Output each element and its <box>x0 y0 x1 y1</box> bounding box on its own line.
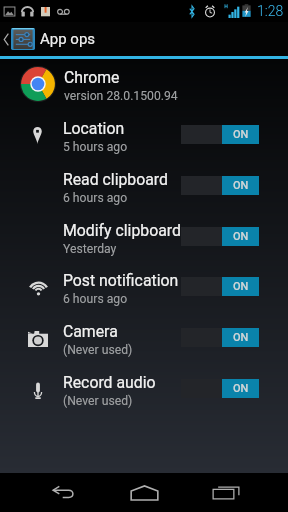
button[interactable]: Modify clipboard <box>0 212 288 262</box>
button[interactable]: Post notification <box>0 262 288 312</box>
staticText: 6 hours ago <box>63 191 128 205</box>
button[interactable]: Recent apps <box>185 473 266 512</box>
staticText: 6 hours ago <box>63 292 128 306</box>
button[interactable]: Toggle permission <box>181 277 259 296</box>
staticText: version 28.0.1500.94 <box>64 89 178 103</box>
button[interactable]: Chrome <box>0 59 288 110</box>
staticText: ON <box>233 280 249 293</box>
button[interactable]: Toggle permission <box>181 125 259 144</box>
button[interactable]: Toggle permission <box>181 379 259 398</box>
staticText: Read clipboard <box>63 170 168 189</box>
staticText: 5 hours ago <box>63 140 128 154</box>
staticText: Camera <box>63 322 118 341</box>
staticText: Record audio <box>63 373 156 392</box>
staticText: 1:28 <box>257 3 284 19</box>
button[interactable]: Back <box>24 473 104 512</box>
staticText: ON <box>233 331 249 344</box>
button[interactable]: Toggle permission <box>181 227 259 246</box>
button[interactable]: Toggle permission <box>181 176 259 195</box>
staticText: Location <box>63 119 125 138</box>
button[interactable]: App ops <box>0 22 288 56</box>
button[interactable]: Toggle permission <box>181 328 259 347</box>
button[interactable]: Home <box>104 473 185 512</box>
staticText: ON <box>233 230 249 243</box>
button[interactable]: Camera <box>0 313 288 363</box>
staticText: ON <box>233 179 249 192</box>
staticText: App ops <box>40 30 96 48</box>
staticText: Modify clipboard <box>63 221 181 240</box>
staticText: Yesterday <box>63 242 117 256</box>
button[interactable]: Record audio <box>0 364 288 414</box>
button[interactable]: Location <box>0 110 288 160</box>
staticText: (Never used) <box>63 343 133 357</box>
staticText: ON <box>233 382 249 395</box>
staticText: ON <box>233 128 249 141</box>
staticText: Post notification <box>63 271 179 290</box>
staticText: (Never used) <box>63 394 133 408</box>
button[interactable]: Read clipboard <box>0 161 288 211</box>
staticText: Chrome <box>64 68 120 87</box>
